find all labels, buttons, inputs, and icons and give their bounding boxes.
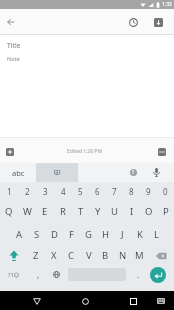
button[interactable] — [148, 245, 174, 266]
button[interactable] — [124, 292, 142, 310]
staticText: 2 — [25, 186, 30, 197]
button[interactable]: V — [80, 245, 97, 266]
button[interactable]: 3 — [36, 182, 54, 200]
button[interactable] — [0, 140, 20, 163]
button[interactable]: W — [18, 200, 36, 223]
staticText: R — [60, 205, 66, 218]
button[interactable] — [28, 292, 46, 310]
button[interactable]: ?1☺ — [0, 266, 28, 283]
button[interactable] — [76, 292, 94, 310]
button[interactable]: D — [46, 223, 63, 245]
button[interactable]: 1 — [0, 182, 18, 200]
button[interactable]: abc — [0, 163, 36, 182]
staticText: H — [102, 228, 110, 241]
staticText: 7 — [112, 186, 117, 197]
staticText: 1 — [7, 186, 12, 197]
staticText: . — [137, 269, 140, 280]
staticText: J — [121, 228, 124, 241]
staticText: Edited 1:26 PM — [67, 148, 102, 155]
button[interactable]: I — [123, 200, 140, 223]
button[interactable]: T — [72, 200, 89, 223]
button[interactable]: X — [45, 245, 63, 266]
staticText: U — [111, 205, 118, 218]
staticText: Note — [7, 55, 20, 62]
button[interactable]: , — [28, 266, 48, 283]
staticText: S — [34, 228, 40, 241]
staticText: 6 — [95, 186, 100, 197]
button[interactable] — [150, 266, 166, 283]
staticText: 9 — [146, 186, 151, 197]
staticText: 8 — [129, 186, 134, 197]
staticText: abc — [12, 168, 25, 178]
staticText: M — [135, 249, 144, 262]
button[interactable]: 6 — [89, 182, 106, 200]
button[interactable]: K — [131, 223, 148, 245]
staticText: Q — [5, 205, 13, 218]
button[interactable]: F — [63, 223, 80, 245]
button[interactable]: ? — [122, 163, 144, 182]
button[interactable]: O — [140, 200, 157, 223]
button[interactable]: . — [126, 266, 150, 283]
staticText: G — [85, 228, 92, 241]
button[interactable]: 9 — [140, 182, 157, 200]
staticText: Z — [33, 249, 39, 262]
staticText: C — [68, 249, 75, 262]
button[interactable] — [150, 140, 174, 163]
staticText: Y — [95, 205, 101, 218]
button[interactable]: A — [10, 223, 28, 245]
button[interactable]: S — [28, 223, 46, 245]
button[interactable]: 5 — [72, 182, 89, 200]
staticText: V — [86, 249, 92, 262]
button[interactable] — [148, 163, 164, 182]
button[interactable]: 4 — [54, 182, 72, 200]
button[interactable]: E — [36, 200, 54, 223]
staticText: 0 — [163, 186, 168, 197]
staticText: T — [78, 205, 84, 218]
button[interactable]: U — [106, 200, 123, 223]
button[interactable]: L — [148, 223, 165, 245]
button[interactable]: B — [97, 245, 114, 266]
button[interactable]: R — [54, 200, 72, 223]
staticText: ?1☺ — [8, 271, 20, 278]
staticText: O — [145, 205, 153, 218]
button[interactable] — [0, 245, 27, 266]
button[interactable] — [152, 292, 170, 310]
button[interactable]: Z — [27, 245, 45, 266]
button[interactable]: 0 — [157, 182, 174, 200]
button[interactable]: H — [97, 223, 114, 245]
staticText: K — [137, 228, 143, 241]
button[interactable]: Q — [0, 200, 18, 223]
staticText: 3 — [43, 186, 48, 197]
button[interactable]: G — [80, 223, 97, 245]
button[interactable]: C — [63, 245, 80, 266]
button[interactable] — [148, 12, 168, 32]
button[interactable]: N — [114, 245, 131, 266]
button[interactable] — [0, 11, 22, 33]
button[interactable] — [123, 12, 143, 32]
staticText: E — [42, 205, 48, 218]
button[interactable] — [48, 266, 65, 283]
staticText: ? — [132, 169, 135, 176]
staticText: Title — [7, 41, 21, 50]
button[interactable]: J — [114, 223, 131, 245]
staticText: 5 — [78, 186, 83, 197]
button[interactable]: 2 — [18, 182, 36, 200]
staticText: A — [16, 228, 23, 241]
button[interactable]: Y — [89, 200, 106, 223]
staticText: 4 — [61, 186, 66, 197]
staticText: F — [69, 228, 74, 241]
staticText: N — [119, 249, 127, 262]
button[interactable]: 8 — [123, 182, 140, 200]
button[interactable]: M — [131, 245, 148, 266]
staticText: , — [37, 269, 40, 280]
staticText: B — [102, 249, 109, 262]
staticText: 1:32 — [162, 1, 172, 8]
staticText: I — [130, 205, 134, 218]
staticText: X — [51, 249, 57, 262]
button[interactable]: 7 — [106, 182, 123, 200]
staticText: D — [51, 228, 58, 241]
staticText: W — [23, 205, 32, 218]
button[interactable]: P — [157, 200, 174, 223]
button[interactable] — [36, 163, 78, 182]
